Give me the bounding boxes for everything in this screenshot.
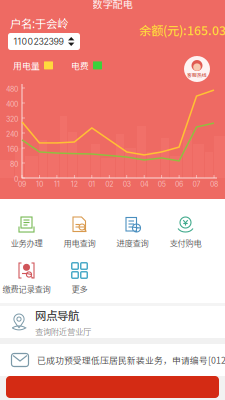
staticText: 80 xyxy=(10,160,18,168)
staticText: 用电量 xyxy=(13,59,40,72)
button[interactable]: 客服热线 xyxy=(184,56,210,82)
staticText: 05 xyxy=(158,180,166,188)
staticText: 400 xyxy=(6,100,18,108)
staticText: 10 xyxy=(36,180,43,188)
staticText: 12 xyxy=(71,180,78,188)
staticText: 240 xyxy=(6,130,18,138)
staticText: 进度查询 xyxy=(116,237,148,249)
button[interactable]: 进度查询 xyxy=(106,212,159,252)
staticText: 06 xyxy=(175,180,183,188)
button[interactable]: 业务办理 xyxy=(0,212,53,252)
staticText: 户名:于会岭 xyxy=(10,15,68,32)
button[interactable]: 已成功预受理低压居民新装业务，申请编号[0120 xyxy=(0,344,225,376)
button[interactable]: 1100232399 xyxy=(8,33,80,50)
button[interactable]: 用电查询 xyxy=(53,212,106,252)
staticText: 04 xyxy=(140,180,148,188)
staticText: 用电查询 xyxy=(63,237,95,249)
staticText: 已成功预受理低压居民新装业务，申请编号[0120 xyxy=(37,354,225,366)
staticText: 支付购电 xyxy=(169,237,201,249)
button[interactable]: 支付购电 xyxy=(159,212,212,252)
staticText: 客服热线 xyxy=(187,71,207,78)
button[interactable]: 网点导航 xyxy=(0,306,225,338)
staticText: 03 xyxy=(123,180,131,188)
staticText: 1100232399 xyxy=(13,36,63,47)
staticText: 02 xyxy=(105,180,113,188)
staticText: 09 xyxy=(18,180,26,188)
staticText: 480 xyxy=(6,85,18,93)
staticText: 余额(元):165.03 xyxy=(139,21,225,39)
staticText: 320 xyxy=(6,115,18,123)
staticText: 查询附近营业厅 xyxy=(35,325,91,337)
staticText: 业务办理 xyxy=(10,237,42,249)
button[interactable]: 立即购电 xyxy=(6,376,219,398)
button[interactable]: 缴费记录查询 xyxy=(0,258,53,298)
staticText: 07 xyxy=(192,180,200,188)
staticText: 网点导航 xyxy=(35,307,79,323)
staticText: 01 xyxy=(88,180,95,188)
staticText: 08 xyxy=(210,180,218,188)
staticText: 缴费记录查询 xyxy=(2,283,50,295)
staticText: 11 xyxy=(54,180,60,188)
staticText: 160 xyxy=(7,145,18,153)
staticText: 电费 xyxy=(71,59,89,72)
staticText: 更多 xyxy=(71,283,87,295)
staticText: 数字配电 xyxy=(92,0,132,11)
staticText: 0 xyxy=(14,175,18,183)
button[interactable]: 更多 xyxy=(53,258,106,298)
